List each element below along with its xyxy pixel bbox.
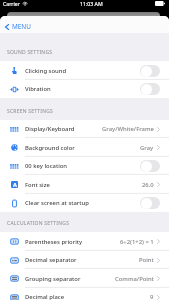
staticText: 00 key location xyxy=(25,162,68,170)
staticText: Parentheses priority xyxy=(25,238,83,246)
staticText: Clear screen at startup xyxy=(25,199,89,207)
staticText: MENU xyxy=(12,22,31,31)
staticText: Carrier xyxy=(3,0,20,7)
button[interactable]: Grouping separator xyxy=(0,269,169,288)
button[interactable]: Background color xyxy=(0,138,169,157)
button[interactable]: Toggle xyxy=(140,65,160,77)
staticText: CALCULATION SETTINGS xyxy=(7,220,70,227)
staticText: Gray xyxy=(140,144,154,152)
staticText: Font size xyxy=(25,181,50,189)
staticText: Point xyxy=(139,256,154,264)
button[interactable]: 00 key location xyxy=(0,157,169,175)
staticText: 6÷2(1+2) = 1 xyxy=(120,238,154,246)
button[interactable]: Vibration xyxy=(0,80,169,98)
staticText: Gray/White/Frame xyxy=(102,125,154,133)
staticText: Clicking sound xyxy=(25,67,67,75)
staticText: Background color xyxy=(25,144,75,152)
button[interactable]: Toggle xyxy=(140,197,160,209)
staticText: Display/Keyboard xyxy=(25,125,75,133)
button[interactable]: MENU xyxy=(0,19,37,34)
staticText: Comma/Point xyxy=(115,275,154,283)
staticText: Decimal separator xyxy=(25,256,77,264)
button[interactable]: A xyxy=(0,175,169,194)
button[interactable]: Clicking sound xyxy=(0,61,169,80)
button[interactable]: Decimal place xyxy=(0,288,169,300)
staticText: 26.0 xyxy=(142,181,154,189)
button[interactable]: Display/Keyboard xyxy=(0,120,169,138)
staticText: SCREEN SETTINGS xyxy=(7,108,54,115)
staticText: Decimal place xyxy=(25,293,65,300)
staticText: 11:03 AM xyxy=(80,0,103,7)
button[interactable]: Parentheses priority xyxy=(0,232,169,251)
staticText: 9 xyxy=(150,293,154,300)
staticText: Grouping separator xyxy=(25,275,81,283)
button[interactable]: Decimal separator xyxy=(0,251,169,269)
button[interactable]: Toggle xyxy=(140,160,160,172)
staticText: Vibration xyxy=(25,85,51,93)
button[interactable]: Toggle xyxy=(140,83,160,95)
staticText: A xyxy=(13,181,17,188)
staticText: SOUND SETTINGS xyxy=(7,49,53,56)
button[interactable]: Clear screen at startup xyxy=(0,194,169,212)
